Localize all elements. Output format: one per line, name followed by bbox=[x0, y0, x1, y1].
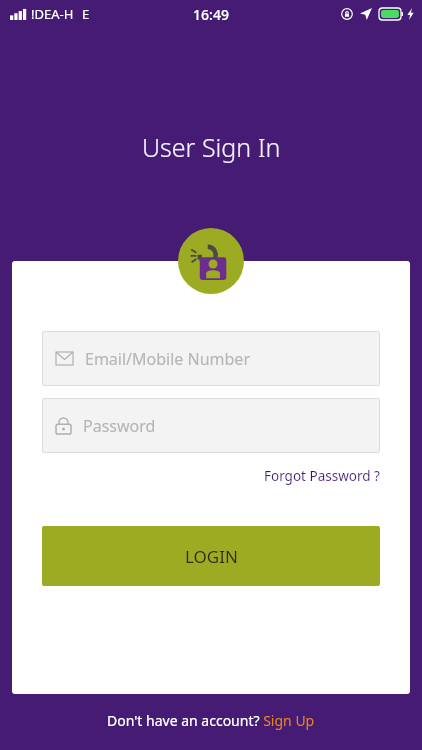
staticText: Don't have an account? Sign Up bbox=[107, 711, 315, 730]
staticText: E bbox=[82, 5, 90, 23]
button[interactable]: Forgot Password ? bbox=[264, 463, 410, 489]
staticText: User Sign In bbox=[142, 130, 281, 164]
staticText: !DEA-H bbox=[31, 5, 74, 23]
staticText: LOGIN bbox=[185, 545, 238, 568]
staticText: Forgot Password ? bbox=[264, 467, 380, 485]
other: Secure login bbox=[178, 228, 244, 294]
staticText: Email/Mobile Number bbox=[85, 348, 250, 370]
button[interactable]: Email/Mobile Number bbox=[42, 331, 380, 386]
button[interactable]: Don't have an account? Sign Up bbox=[101, 705, 321, 736]
button[interactable]: LOGIN bbox=[42, 526, 380, 586]
staticText: Password bbox=[83, 415, 156, 437]
button[interactable]: Password bbox=[42, 398, 380, 453]
staticText: 16:49 bbox=[193, 5, 229, 24]
